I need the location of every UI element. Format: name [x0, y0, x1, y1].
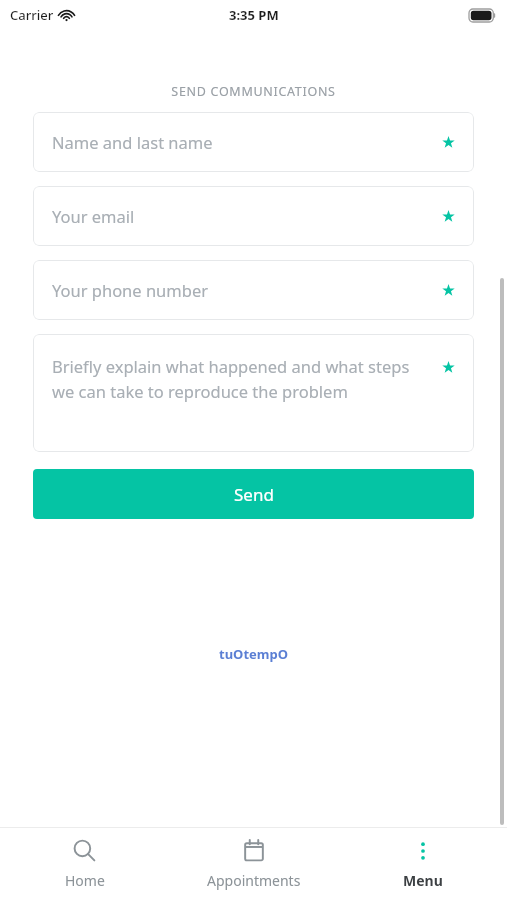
- staticText: Appointments: [207, 871, 301, 890]
- button[interactable]: Briefly explain what happened and what s…: [33, 334, 474, 452]
- staticText: Home: [65, 871, 105, 890]
- button[interactable]: Name and last name: [33, 112, 474, 172]
- button[interactable]: Your email: [33, 186, 474, 246]
- staticText: Name and last name: [52, 131, 213, 153]
- staticText: Menu: [403, 871, 443, 890]
- other: Menu: [410, 838, 436, 864]
- staticText: tuOtempO: [0, 645, 507, 663]
- button[interactable]: Home: [0, 832, 169, 896]
- staticText: Your phone number: [52, 279, 209, 301]
- button[interactable]: Appointments: [169, 832, 338, 896]
- other: Home: [72, 838, 98, 864]
- staticText: SEND COMMUNICATIONS: [0, 83, 507, 100]
- other: Appointments: [241, 838, 267, 864]
- button[interactable]: Send: [33, 469, 474, 519]
- button[interactable]: Your phone number: [33, 260, 474, 320]
- staticText: Carrier: [10, 6, 54, 24]
- staticText: 3:35 PM: [229, 6, 279, 24]
- button[interactable]: Menu: [338, 832, 507, 896]
- staticText: Briefly explain what happened and what s…: [52, 355, 410, 403]
- staticText: Send: [234, 483, 274, 506]
- staticText: Your email: [52, 205, 135, 227]
